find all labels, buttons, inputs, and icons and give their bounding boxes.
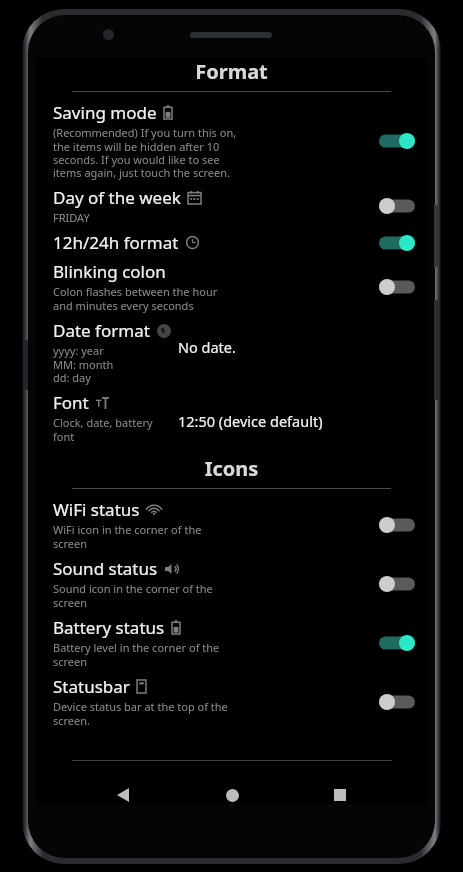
staticText: Date format bbox=[53, 319, 150, 342]
staticText: Battery status bbox=[53, 616, 165, 639]
staticText: (Recommended) If you turn this on, the i… bbox=[53, 125, 237, 180]
staticText: No date. bbox=[178, 337, 236, 357]
button[interactable]: On bbox=[379, 131, 415, 151]
button[interactable]: Off bbox=[379, 515, 415, 535]
staticText: Statusbar bbox=[53, 675, 130, 698]
staticText: Clock, date, battery font bbox=[53, 415, 153, 444]
staticText: WiFi status bbox=[53, 498, 140, 521]
staticText: Colon flashes between the hour and minut… bbox=[53, 284, 218, 313]
button[interactable]: Off bbox=[379, 574, 415, 594]
staticText: Icons bbox=[36, 455, 427, 482]
staticText: yyyy: year MM: month dd: day bbox=[53, 343, 114, 385]
staticText: 12h/24h format bbox=[53, 231, 179, 254]
button[interactable]: Off bbox=[379, 196, 415, 216]
button[interactable]: Home bbox=[210, 773, 254, 817]
staticText: Font bbox=[53, 391, 89, 414]
button[interactable]: Date format bbox=[36, 316, 427, 388]
button[interactable]: Day of the week bbox=[36, 183, 427, 228]
button[interactable]: Off bbox=[379, 692, 415, 712]
button[interactable]: Recents bbox=[318, 773, 362, 817]
button[interactable]: Sound status bbox=[36, 554, 427, 613]
staticText: FRIDAY bbox=[53, 210, 90, 225]
button[interactable]: Blinking colon bbox=[36, 257, 427, 316]
button[interactable]: Statusbar bbox=[36, 672, 427, 731]
button[interactable]: Battery status bbox=[36, 613, 427, 672]
button[interactable]: Font bbox=[36, 388, 427, 447]
staticText: Day of the week bbox=[53, 186, 181, 209]
staticText: Sound status bbox=[53, 557, 158, 580]
staticText: WiFi icon in the corner of the screen bbox=[53, 522, 202, 551]
button[interactable]: WiFi status bbox=[36, 495, 427, 554]
button[interactable]: On bbox=[379, 233, 415, 253]
button[interactable]: Off bbox=[379, 277, 415, 297]
staticText: Device status bar at the top of the scre… bbox=[53, 699, 228, 728]
button[interactable]: On bbox=[379, 633, 415, 653]
staticText: Battery level in the corner of the scree… bbox=[53, 640, 220, 669]
staticText: Blinking colon bbox=[53, 260, 166, 283]
staticText: Saving mode bbox=[53, 101, 157, 124]
staticText: Sound icon in the corner of the screen bbox=[53, 581, 213, 610]
staticText: 12:50 (device default) bbox=[178, 411, 323, 431]
button[interactable]: Saving mode bbox=[36, 98, 427, 183]
button[interactable]: 12h/24h format bbox=[36, 228, 427, 257]
staticText: Format bbox=[36, 58, 427, 85]
button[interactable]: Back bbox=[101, 773, 145, 817]
